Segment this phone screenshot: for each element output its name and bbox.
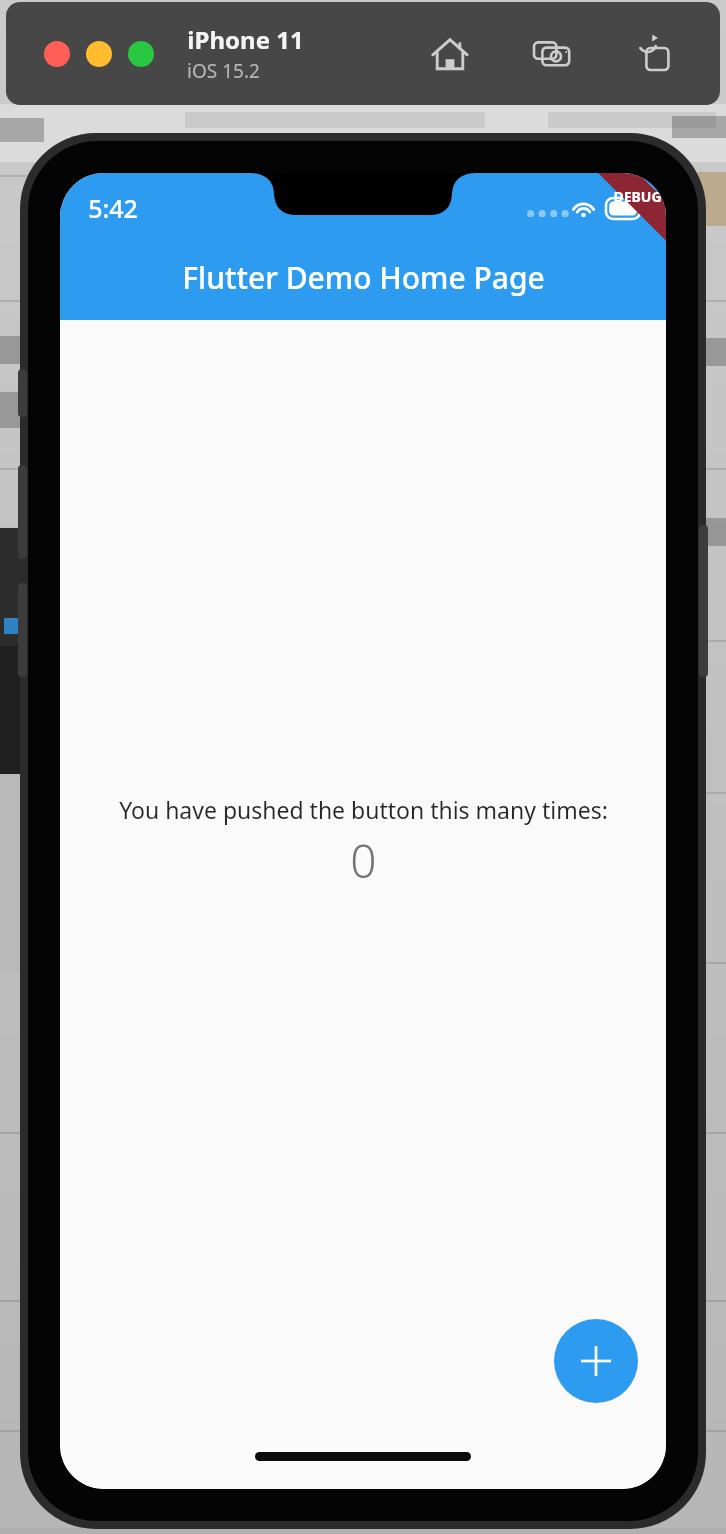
staticText: iPhone 11 bbox=[187, 23, 304, 56]
button[interactable]: Screenshot bbox=[528, 30, 576, 78]
button[interactable]: Increment bbox=[554, 1319, 638, 1403]
staticText: DEBUG bbox=[613, 187, 662, 206]
button[interactable]: Close bbox=[44, 41, 70, 67]
button[interactable]: Minimise bbox=[86, 41, 112, 67]
staticText: 5:42 bbox=[88, 191, 138, 225]
button[interactable]: Zoom bbox=[128, 41, 154, 67]
button[interactable]: Rotate bbox=[630, 30, 678, 78]
staticText: 0 bbox=[350, 829, 377, 892]
button[interactable]: Home bbox=[426, 30, 474, 78]
staticText: iOS 15.2 bbox=[187, 58, 260, 84]
staticText: Flutter Demo Home Page bbox=[182, 257, 545, 298]
staticText: You have pushed the button this many tim… bbox=[119, 794, 608, 825]
